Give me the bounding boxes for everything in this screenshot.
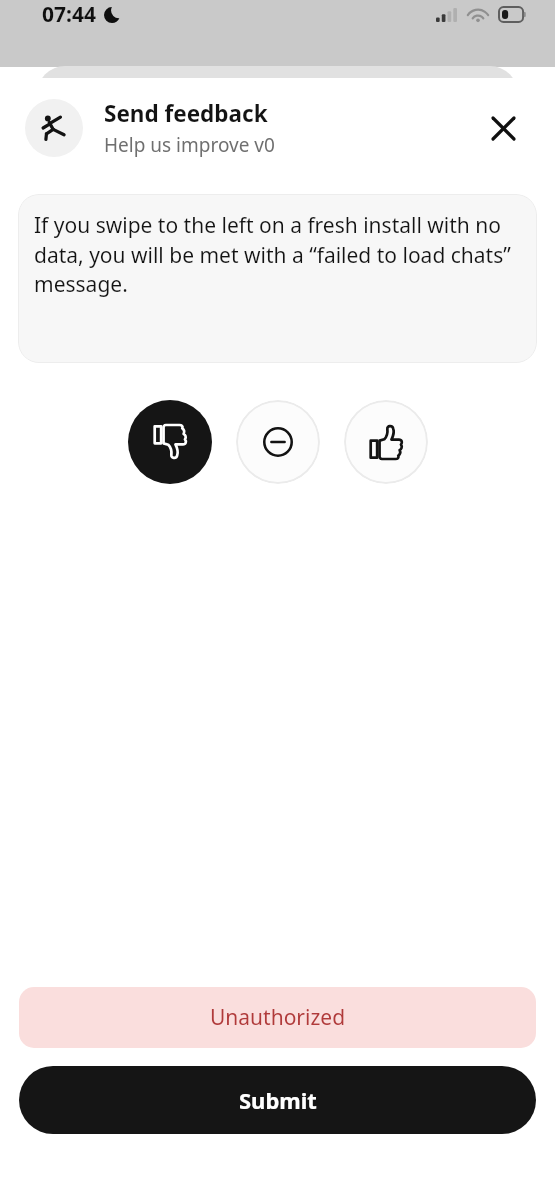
staticText: Unauthorized xyxy=(210,1003,346,1032)
staticText: 07:44 xyxy=(42,0,96,29)
staticText: Send feedback xyxy=(104,98,268,129)
button[interactable]: Close xyxy=(473,98,533,158)
staticText: Help us improve v0 xyxy=(104,132,275,158)
staticText: Submit xyxy=(239,1085,317,1115)
button[interactable]: Submit xyxy=(19,1066,536,1134)
button[interactable]: Feedback xyxy=(25,99,83,157)
button[interactable]: Thumbs up xyxy=(344,400,428,484)
button[interactable]: Unauthorized xyxy=(19,987,536,1048)
button[interactable]: If you swipe to the left on a fresh inst… xyxy=(18,194,537,363)
staticText: If you swipe to the left on a fresh inst… xyxy=(34,211,525,298)
button[interactable]: Neutral xyxy=(236,400,320,484)
button[interactable]: Thumbs down xyxy=(128,400,212,484)
